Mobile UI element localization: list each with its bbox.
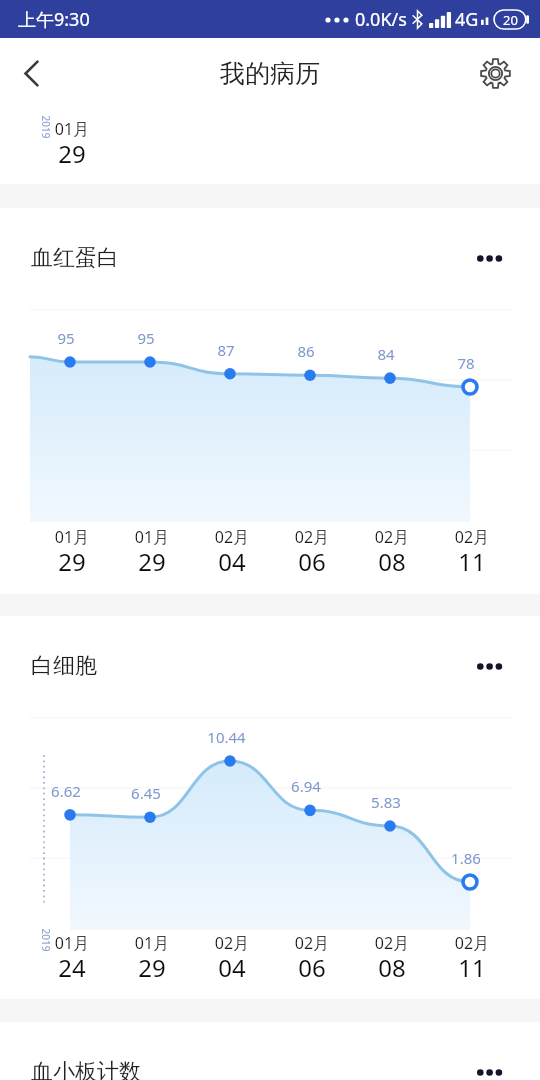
button[interactable]: More options	[466, 241, 512, 275]
staticText: 02月	[449, 932, 495, 954]
button[interactable]: More options	[466, 649, 512, 683]
staticText: 29	[49, 137, 95, 170]
staticText: 29	[49, 545, 95, 578]
staticText: 血小板计数	[31, 1058, 141, 1080]
staticText: 02月	[449, 526, 495, 548]
staticText: 1.86	[451, 848, 481, 868]
staticText: 06	[289, 951, 335, 984]
staticText: 2019	[38, 928, 52, 951]
staticText: 0.0K/s	[355, 7, 407, 32]
staticText: 87	[217, 340, 235, 360]
staticText: 2019	[38, 115, 52, 138]
staticText: 白细胞	[31, 652, 97, 680]
staticText: 06	[289, 545, 335, 578]
staticText: 01月	[49, 526, 95, 548]
staticText: 11	[449, 951, 495, 984]
staticText: 84	[377, 344, 395, 364]
staticText: 6.62	[51, 781, 81, 801]
staticText: 上午9:30	[18, 7, 90, 32]
staticText: 5.83	[371, 792, 401, 812]
staticText: 95	[137, 328, 155, 348]
staticText: 11	[449, 545, 495, 578]
staticText: 20	[503, 11, 518, 29]
staticText: 29	[129, 545, 175, 578]
staticText: 01月	[129, 526, 175, 548]
staticText: 02月	[209, 526, 255, 548]
staticText: 29	[129, 951, 175, 984]
staticText: 血红蛋白	[31, 244, 119, 272]
button[interactable]: Back	[4, 46, 58, 100]
staticText: 我的病历	[220, 58, 320, 89]
staticText: 08	[369, 545, 415, 578]
button[interactable]: More options	[466, 1055, 512, 1080]
staticText: 02月	[289, 526, 335, 548]
staticText: 10.44	[207, 727, 246, 747]
staticText: 02月	[289, 932, 335, 954]
staticText: 01月	[49, 118, 95, 140]
staticText: 04	[209, 545, 255, 578]
staticText: 02月	[209, 932, 255, 954]
staticText: 6.94	[291, 776, 321, 796]
staticText: 02月	[369, 526, 415, 548]
staticText: 01月	[49, 932, 95, 954]
button[interactable]: Settings	[466, 44, 524, 102]
staticText: 08	[369, 951, 415, 984]
staticText: 02月	[369, 932, 415, 954]
staticText: 78	[457, 353, 475, 373]
staticText: 95	[57, 328, 75, 348]
staticText: 4G	[455, 7, 479, 32]
staticText: 01月	[129, 932, 175, 954]
staticText: 24	[49, 951, 95, 984]
staticText: 6.45	[131, 783, 161, 803]
staticText: 04	[209, 951, 255, 984]
staticText: 86	[297, 341, 315, 361]
